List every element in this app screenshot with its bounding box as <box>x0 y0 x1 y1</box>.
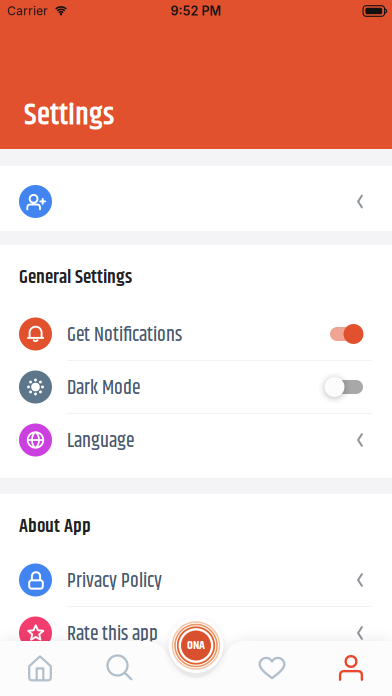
button[interactable]: Search <box>90 645 150 691</box>
button[interactable]: Rate this app <box>0 607 392 659</box>
button[interactable]: ONA <box>167 616 225 674</box>
button[interactable]: Favorites <box>242 645 302 691</box>
staticText: Settings <box>24 93 114 139</box>
staticText: About App <box>19 512 91 541</box>
button[interactable]: Privacy Policy <box>0 554 392 606</box>
staticText: ONA <box>187 636 205 655</box>
button[interactable]: Account <box>0 166 392 231</box>
staticText: Get Notifications <box>67 321 182 350</box>
staticText: Privacy Policy <box>67 567 162 596</box>
button[interactable]: Profile <box>321 645 381 691</box>
button[interactable]: Language <box>0 414 392 466</box>
staticText: General Settings <box>19 263 132 292</box>
button[interactable]: Home <box>10 645 70 691</box>
button[interactable]: Get Notifications <box>331 323 366 345</box>
button[interactable]: Dark Mode <box>331 376 366 398</box>
staticText: 9:52 PM <box>170 3 221 18</box>
staticText: Rate this app <box>67 620 158 649</box>
staticText: Carrier <box>7 4 48 18</box>
staticText: Language <box>67 427 134 456</box>
staticText: Dark Mode <box>67 374 140 403</box>
